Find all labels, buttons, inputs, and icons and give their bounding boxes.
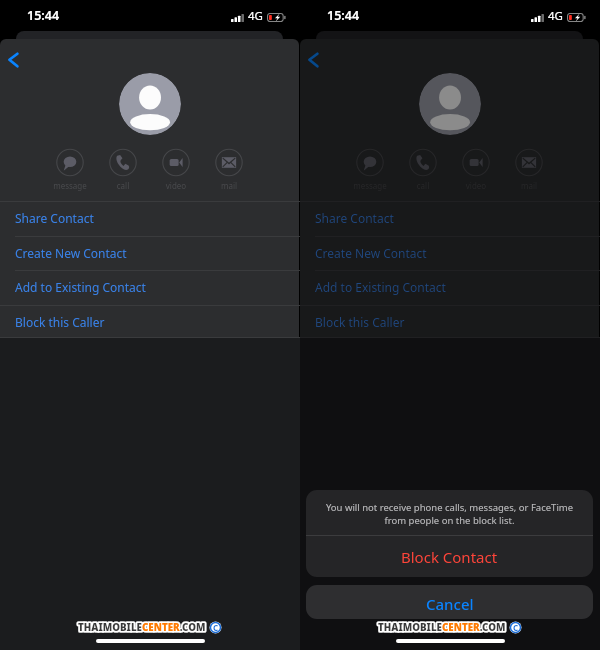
staticText: Create New Contact (315, 245, 427, 261)
button[interactable]: Create New Contact (0, 236, 300, 271)
staticText: Cancel (426, 594, 474, 614)
button[interactable]: call (101, 149, 145, 191)
staticText: Share Contact (15, 210, 94, 226)
staticText: C (213, 622, 219, 633)
button[interactable]: Block this Caller (300, 305, 600, 340)
staticText: THAIMOBILECENTER.COM (78, 621, 206, 634)
staticText: 4G (248, 8, 263, 24)
staticText: You will not receive phone calls, messag… (306, 501, 593, 527)
button[interactable]: video (454, 149, 498, 191)
staticText: message (48, 180, 92, 191)
button[interactable]: mail (507, 149, 551, 191)
button[interactable]: message (48, 149, 92, 191)
staticText: Create New Contact (15, 245, 127, 261)
button[interactable]: Block this Caller (0, 305, 300, 340)
button[interactable]: mail (207, 149, 251, 191)
staticText: 15:44 (27, 7, 60, 24)
staticText: THAIMOBILECENTER.COM (378, 621, 506, 634)
staticText: mail (207, 180, 251, 191)
button[interactable]: Create New Contact (300, 236, 600, 271)
staticText: Share Contact (315, 210, 394, 226)
staticText: Block this Caller (15, 314, 105, 330)
staticText: Add to Existing Contact (315, 279, 446, 295)
button[interactable]: Back (2, 45, 32, 75)
button[interactable]: Add to Existing Contact (300, 270, 600, 305)
button[interactable]: call (401, 149, 445, 191)
staticText: video (154, 180, 198, 191)
staticText: Add to Existing Contact (15, 279, 146, 295)
staticText: THAIMOBILECENTER.COM (378, 621, 506, 634)
button[interactable]: Add to Existing Contact (0, 270, 300, 305)
button[interactable]: Cancel (306, 585, 593, 619)
staticText: C (513, 622, 519, 633)
staticText: 4G (548, 8, 563, 24)
button[interactable]: Block Contact (306, 536, 593, 577)
staticText: Block this Caller (315, 314, 405, 330)
button[interactable]: video (154, 149, 198, 191)
staticText: Block Contact (401, 547, 498, 567)
staticText: 15:44 (327, 7, 360, 24)
staticText: call (101, 180, 145, 191)
button[interactable]: message (348, 149, 392, 191)
button[interactable]: Back (302, 45, 332, 75)
staticText: message (348, 180, 392, 191)
staticText: THAIMOBILECENTER.COM (78, 621, 206, 634)
button[interactable]: Share Contact (300, 201, 600, 236)
button[interactable]: Share Contact (0, 201, 300, 236)
